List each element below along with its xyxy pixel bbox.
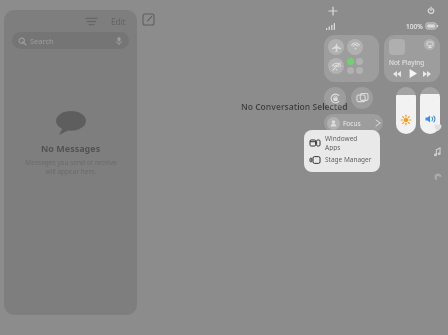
button[interactable]: AirDrop: [347, 39, 363, 55]
button[interactable]: Filter messages: [82, 12, 100, 30]
button[interactable]: Bluetooth: [356, 58, 363, 65]
staticText: Messages you send or receive will appear…: [23, 158, 119, 176]
button[interactable]: Focus: [324, 114, 383, 132]
staticText: Edit: [111, 16, 126, 27]
staticText: 100%: [406, 22, 423, 31]
staticText: No Messages: [41, 142, 101, 154]
staticText: Search: [30, 36, 54, 46]
button[interactable]: Add control: [326, 4, 340, 18]
button[interactable]: Search: [12, 32, 129, 49]
button[interactable]: AirPlay: [424, 39, 435, 50]
button[interactable]: Cellular data: [347, 58, 354, 65]
button[interactable]: Play: [405, 69, 419, 78]
button[interactable]: Edit: [108, 14, 129, 29]
button[interactable]: Hotspot: [347, 67, 354, 74]
button[interactable]: Favorites: [431, 120, 445, 134]
button[interactable]: Previous: [391, 69, 403, 78]
button[interactable]: Windowed Apps: [304, 134, 380, 151]
button[interactable]: Wi-Fi: [328, 58, 344, 74]
button[interactable]: Next: [421, 69, 433, 78]
button[interactable]: New message: [139, 10, 157, 28]
button[interactable]: Airplane mode: [328, 39, 344, 55]
staticText: Focus: [343, 119, 361, 128]
staticText: Windowed Apps: [325, 134, 374, 151]
button[interactable]: AirPlay: [356, 67, 363, 74]
button[interactable]: Music: [431, 145, 445, 159]
button[interactable]: AirPlay: [384, 35, 440, 82]
staticText: Not Playing: [389, 58, 425, 67]
button[interactable]: Power off: [424, 4, 438, 18]
button[interactable]: Camera: [324, 137, 346, 159]
button[interactable]: Volume: [420, 87, 440, 134]
button[interactable]: Brightness: [396, 87, 416, 134]
button[interactable]: Stage Manager: [304, 151, 380, 168]
button[interactable]: Hearing: [431, 170, 445, 184]
staticText: Stage Manager: [325, 155, 372, 164]
staticText: No Conversation Selected: [241, 101, 348, 113]
button[interactable]: Rotation lock: [324, 87, 346, 109]
button[interactable]: Screen mirroring: [351, 87, 373, 109]
